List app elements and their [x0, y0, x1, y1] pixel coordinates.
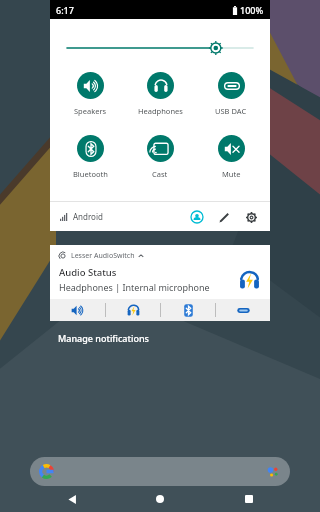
staticText: Cast [152, 169, 168, 179]
button[interactable]: Speakers [59, 71, 121, 117]
staticText: Manage notifications [58, 332, 149, 344]
button[interactable]: Recents [232, 486, 266, 512]
button[interactable]: Headset [106, 299, 160, 321]
button[interactable]: Speaker [50, 299, 105, 321]
staticText: Mute [222, 169, 241, 179]
button[interactable]: Edit tiles [215, 208, 233, 226]
staticText: Headphones [138, 106, 183, 116]
button[interactable]: Back [55, 486, 89, 512]
button[interactable]: Bluetooth [161, 299, 215, 321]
button[interactable]: Headphones [129, 71, 191, 117]
staticText: USB DAC [215, 106, 247, 116]
button[interactable]: Audio Status [59, 266, 261, 293]
button[interactable]: Lesser AudioSwitch [59, 251, 261, 261]
staticText: Lesser AudioSwitch [71, 251, 135, 261]
button[interactable]: USB [216, 299, 270, 321]
staticText: Bluetooth [73, 169, 108, 179]
button[interactable]: Settings [242, 208, 260, 226]
button[interactable]: Cast [129, 134, 191, 180]
button[interactable]: User account [188, 208, 206, 226]
button[interactable]: USB DAC [200, 71, 262, 117]
staticText: Headphones | Internal microphone [59, 281, 210, 293]
button[interactable]: Manage notifications [57, 331, 150, 345]
button[interactable]: Home [143, 486, 177, 512]
staticText: Android [73, 211, 103, 222]
button[interactable]: Mute [200, 134, 262, 180]
staticText: Audio Status [59, 266, 117, 279]
staticText: Speakers [74, 106, 107, 116]
button[interactable]: Bluetooth [59, 134, 121, 180]
staticText: 6:17 [56, 4, 74, 16]
button[interactable] [50, 40, 270, 56]
button[interactable]: Google search [30, 457, 290, 486]
staticText: 100% [240, 4, 264, 16]
